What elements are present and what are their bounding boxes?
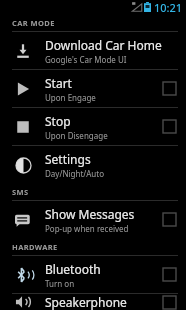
staticText: CAR MODE xyxy=(12,18,55,28)
staticText: Speakerphone xyxy=(45,294,127,310)
button[interactable]: Show Messages xyxy=(0,201,186,238)
button[interactable]: Bluetooth xyxy=(0,256,186,293)
staticText: Bluetooth xyxy=(45,261,101,277)
staticText: Pop-up when received xyxy=(45,223,129,234)
staticText: Settings xyxy=(45,151,91,167)
button[interactable]: Stop xyxy=(0,108,186,145)
button[interactable]: Speakerphone xyxy=(0,294,186,310)
button[interactable]: Toggle Show Messages xyxy=(163,213,176,226)
button[interactable]: Start xyxy=(0,70,186,107)
staticText: Show Messages xyxy=(45,206,135,222)
staticText: Upon Disengage xyxy=(45,130,108,141)
staticText: Turn on xyxy=(45,278,75,289)
button[interactable]: Toggle Bluetooth xyxy=(163,268,176,281)
button[interactable]: Settings xyxy=(0,146,186,183)
staticText: Upon Engage xyxy=(45,92,96,103)
button[interactable]: Toggle Stop xyxy=(163,120,176,133)
button[interactable]: Download Car Home xyxy=(0,32,186,69)
staticText: 10:21 xyxy=(154,0,183,14)
button[interactable]: Toggle Start xyxy=(163,82,176,95)
staticText: SMS xyxy=(12,187,29,197)
staticText: HARDWARE xyxy=(12,242,58,252)
staticText: Day/Night/Auto xyxy=(45,168,105,179)
button[interactable]: Toggle Speakerphone xyxy=(163,296,176,309)
staticText: Download Car Home xyxy=(45,37,162,53)
staticText: Stop xyxy=(45,113,71,129)
staticText: Start xyxy=(45,75,72,91)
staticText: Google's Car Mode UI xyxy=(45,54,127,65)
